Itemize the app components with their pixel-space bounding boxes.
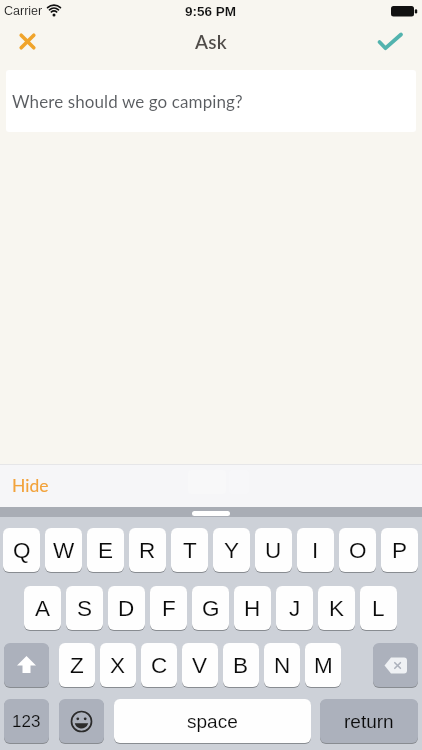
staticText: K — [329, 596, 345, 621]
staticText: D — [118, 596, 135, 621]
staticText: A — [35, 596, 51, 621]
staticText: X — [110, 653, 126, 678]
staticText: space — [187, 711, 238, 732]
staticText: B — [233, 653, 249, 678]
staticText: L — [372, 596, 385, 621]
staticText: Y — [224, 538, 240, 563]
staticText: N — [274, 653, 291, 678]
staticText: Carrier — [4, 4, 43, 18]
staticText: 123 — [12, 712, 41, 731]
staticText: M — [314, 653, 333, 678]
staticText: G — [202, 596, 220, 621]
staticText: U — [265, 538, 282, 563]
staticText: R — [139, 538, 156, 563]
staticText: F — [162, 596, 176, 621]
staticText: T — [183, 538, 197, 563]
staticText: 9:56 PM — [185, 4, 237, 19]
staticText: Ask — [195, 30, 227, 52]
staticText: W — [53, 538, 75, 563]
staticText: J — [289, 596, 301, 621]
staticText: V — [192, 653, 208, 678]
staticText: Hide — [12, 475, 49, 496]
staticText: Q — [13, 538, 31, 563]
staticText: H — [244, 596, 261, 621]
staticText: E — [98, 538, 114, 563]
staticText: C — [151, 653, 168, 678]
staticText: P — [392, 538, 408, 563]
staticText: Where should we go camping? — [12, 91, 243, 111]
staticText: Z — [70, 653, 84, 678]
staticText: S — [77, 596, 93, 621]
staticText: I — [312, 538, 319, 563]
staticText: return — [344, 711, 394, 732]
staticText: O — [349, 538, 367, 563]
